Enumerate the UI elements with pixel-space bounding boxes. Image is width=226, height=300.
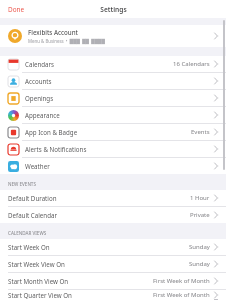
button[interactable]: Calendars bbox=[0, 56, 226, 73]
button[interactable]: Accounts bbox=[0, 73, 226, 90]
staticText: Settings bbox=[100, 5, 127, 14]
button[interactable]: Start Quarter View On bbox=[0, 290, 226, 300]
button[interactable]: Start Week On bbox=[0, 239, 226, 256]
button[interactable]: Start Week View On bbox=[0, 256, 226, 273]
button[interactable]: Start Month View On bbox=[0, 273, 226, 290]
staticText: Done bbox=[8, 5, 25, 14]
staticText: Menu & Business • ███ ██ ████ bbox=[28, 38, 105, 44]
staticText: Start Quarter View On bbox=[8, 291, 72, 299]
staticText: Accounts bbox=[25, 77, 52, 85]
staticText: Start Month View On bbox=[8, 277, 69, 285]
staticText: Sunday bbox=[189, 243, 210, 251]
staticText: Start Week View On bbox=[8, 260, 65, 268]
staticText: Events bbox=[191, 128, 210, 136]
staticText: Appearance bbox=[25, 111, 60, 119]
staticText: Sunday bbox=[189, 260, 210, 268]
staticText: NEW EVENTS bbox=[8, 181, 36, 187]
staticText: First Week of Month bbox=[153, 277, 210, 285]
button[interactable]: Appearance bbox=[0, 107, 226, 124]
staticText: 1 Hour bbox=[190, 194, 210, 202]
staticText: App Icon & Badge bbox=[25, 128, 78, 136]
staticText: Openings bbox=[25, 94, 54, 102]
staticText: Default Calendar bbox=[8, 211, 57, 219]
staticText: Default Duration bbox=[8, 194, 57, 202]
staticText: Alerts & Notifications bbox=[25, 145, 87, 153]
staticText: Calendars bbox=[25, 60, 55, 68]
staticText: CALENDAR VIEWS bbox=[8, 230, 47, 236]
staticText: 16 Calendars bbox=[173, 60, 210, 68]
button[interactable]: Default Calendar bbox=[0, 207, 226, 223]
button[interactable]: Openings bbox=[0, 90, 226, 107]
staticText: Weather bbox=[25, 162, 50, 170]
staticText: Private bbox=[190, 211, 210, 219]
button[interactable]: Default Duration bbox=[0, 190, 226, 207]
staticText: Flexibits Account bbox=[28, 28, 78, 36]
button[interactable]: App Icon & Badge bbox=[0, 124, 226, 141]
staticText: Start Week On bbox=[8, 243, 50, 251]
button[interactable]: Alerts & Notifications bbox=[0, 141, 226, 158]
button[interactable]: Flexibits Account bbox=[0, 25, 226, 47]
button[interactable]: Done bbox=[6, 3, 27, 16]
staticText: First Week of Month bbox=[153, 291, 210, 299]
button[interactable]: Weather bbox=[0, 158, 226, 174]
